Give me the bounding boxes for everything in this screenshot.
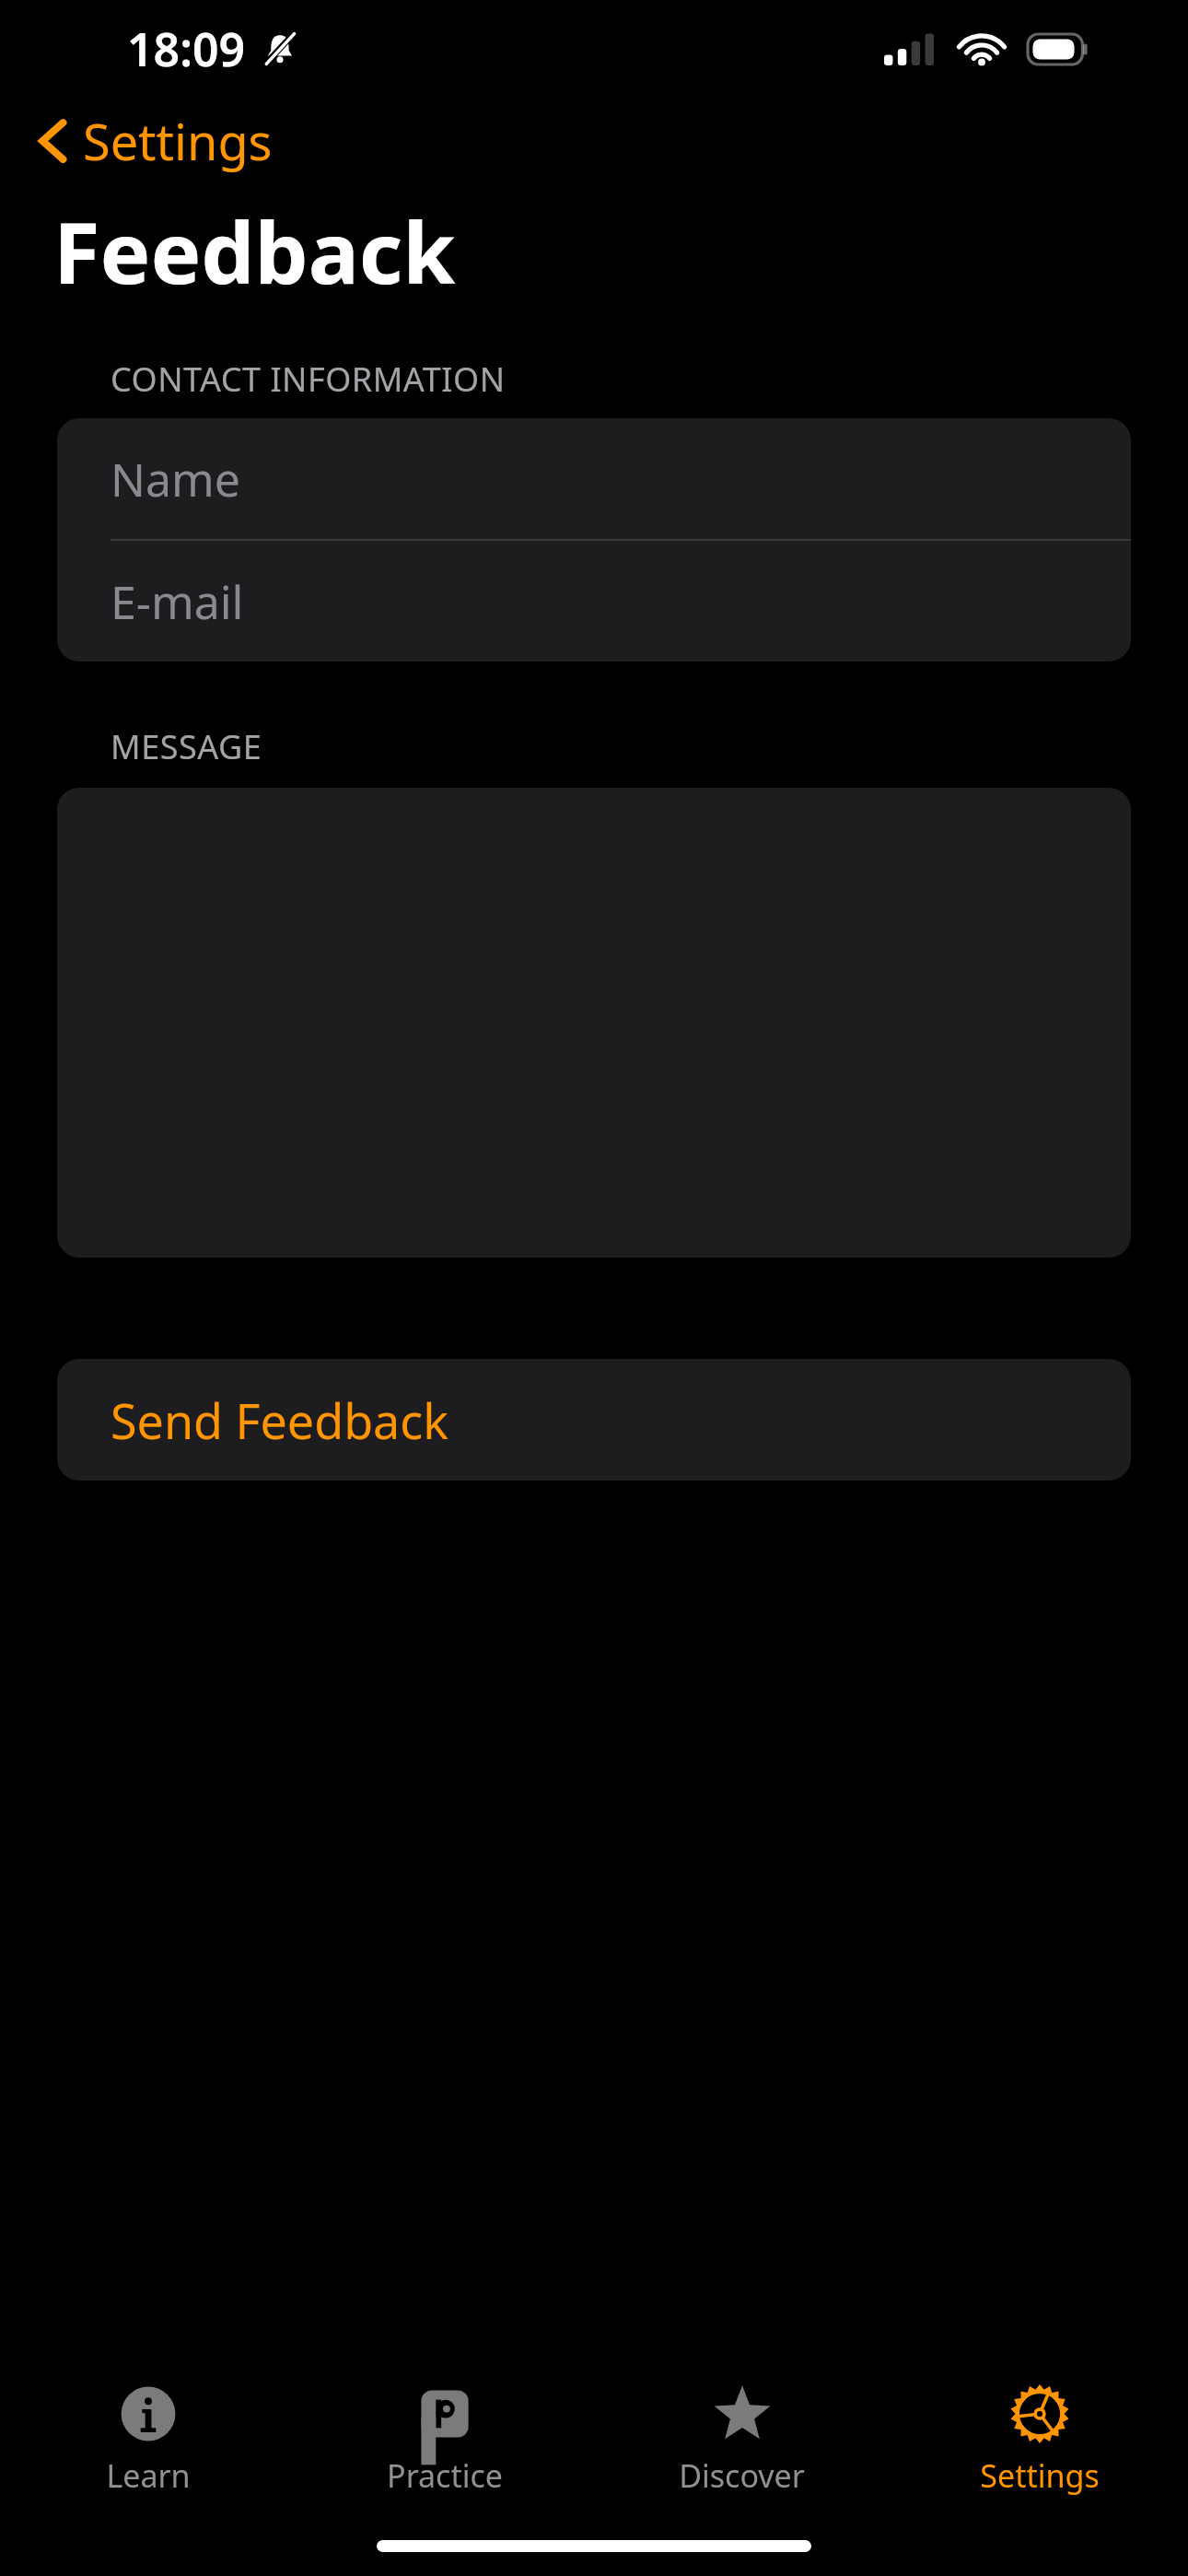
staticText: MESSAGE bbox=[111, 724, 262, 769]
button[interactable]: Send Feedback bbox=[57, 1359, 1131, 1481]
button[interactable]: Practice bbox=[297, 2361, 593, 2520]
button[interactable]: Name bbox=[57, 418, 1131, 539]
button[interactable]: Settings bbox=[891, 2361, 1188, 2520]
button[interactable]: Settings bbox=[31, 98, 278, 184]
other: Silent mode bbox=[261, 29, 299, 68]
staticText: Name bbox=[111, 448, 240, 510]
staticText: Discover bbox=[679, 2454, 805, 2497]
button[interactable]: E-mail bbox=[57, 541, 1131, 662]
staticText: Feedback bbox=[53, 193, 456, 309]
staticText: 18:09 bbox=[127, 18, 246, 80]
staticText: Settings bbox=[83, 107, 273, 175]
button[interactable]: Discover bbox=[593, 2361, 891, 2520]
button[interactable]: Learn bbox=[0, 2361, 297, 2520]
staticText: Send Feedback bbox=[111, 1388, 449, 1453]
staticText: Learn bbox=[106, 2454, 191, 2497]
staticText: E-mail bbox=[111, 570, 244, 633]
staticText: Practice bbox=[387, 2454, 503, 2497]
staticText: Settings bbox=[980, 2454, 1100, 2497]
staticText: CONTACT INFORMATION bbox=[111, 357, 506, 402]
